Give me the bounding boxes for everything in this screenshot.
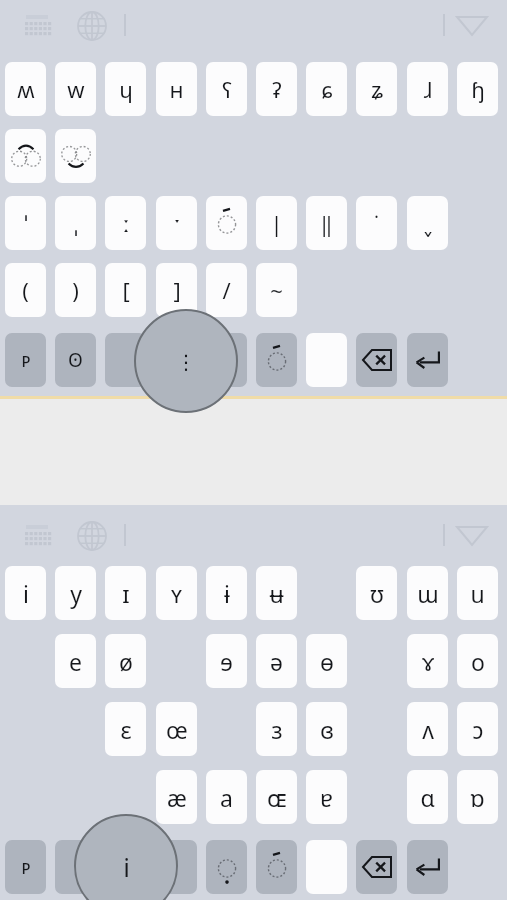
button[interactable]: Key [55, 840, 96, 894]
staticText: ʊ [370, 578, 384, 609]
staticText: ʉ [269, 578, 284, 609]
staticText: ɵ [320, 646, 334, 677]
button[interactable]: ɨ [206, 566, 247, 620]
button[interactable]: ‖ [306, 196, 347, 250]
button[interactable]: ɥ [105, 62, 146, 116]
button[interactable]: Diacritic [206, 196, 247, 250]
button[interactable]: ɒ [457, 770, 498, 824]
button[interactable]: œ [156, 702, 197, 756]
button[interactable]: Key [105, 840, 146, 894]
staticText: ɞ [320, 714, 334, 745]
button[interactable]: ɧ [457, 62, 498, 116]
button[interactable]: ɘ [206, 634, 247, 688]
button[interactable]: e [55, 634, 96, 688]
button[interactable]: Key [156, 333, 197, 387]
button[interactable]: Enter [407, 333, 448, 387]
button[interactable]: Key [306, 333, 347, 387]
button[interactable]: æ [156, 770, 197, 824]
staticText: i [23, 578, 29, 609]
button[interactable]: ɜ [256, 702, 297, 756]
staticText: ʑ [371, 74, 383, 104]
staticText: ɛ [120, 714, 132, 745]
button[interactable]: / [206, 263, 247, 317]
button[interactable]: ɐ [306, 770, 347, 824]
button[interactable]: ʏ [156, 566, 197, 620]
button[interactable]: Diacritic [256, 840, 297, 894]
staticText: ɔ [472, 714, 484, 745]
button[interactable]: w [55, 62, 96, 116]
button[interactable]: ɶ [256, 770, 297, 824]
staticText: i [123, 849, 130, 884]
button[interactable]: ˈ [5, 196, 46, 250]
button[interactable]: ɯ [407, 566, 448, 620]
staticText: ( [22, 275, 29, 305]
staticText: ː [122, 208, 130, 238]
button[interactable]: ɛ [105, 702, 146, 756]
button[interactable]: Enter [407, 840, 448, 894]
button[interactable]: ɤ [407, 634, 448, 688]
button[interactable]: ˑ [156, 196, 197, 250]
staticText: ˙ [374, 208, 379, 238]
button[interactable]: Key [105, 333, 146, 387]
button[interactable]: ᴘ [5, 840, 46, 894]
button[interactable]: ~ [256, 263, 297, 317]
staticText: ø [119, 646, 133, 677]
staticText: ə [270, 646, 283, 677]
button[interactable]: ʉ [256, 566, 297, 620]
button[interactable]: Change language [76, 10, 108, 42]
button[interactable]: ɵ [306, 634, 347, 688]
staticText: ~ [270, 275, 283, 305]
button[interactable]: | [256, 196, 297, 250]
staticText: | [270, 208, 283, 238]
button[interactable]: ə [256, 634, 297, 688]
button[interactable]: y [55, 566, 96, 620]
button[interactable]: Settings [22, 11, 60, 41]
button[interactable]: ɺ [407, 62, 448, 116]
button[interactable]: ɪ [105, 566, 146, 620]
button[interactable]: Tie bar [55, 129, 96, 183]
button[interactable]: ɕ [306, 62, 347, 116]
button[interactable]: ( [5, 263, 46, 317]
button[interactable]: Change language [76, 520, 108, 552]
button[interactable]: ʊ [356, 566, 397, 620]
button[interactable]: Key [206, 333, 247, 387]
button[interactable]: Key [156, 840, 197, 894]
button[interactable]: ɑ [407, 770, 448, 824]
button[interactable]: [ [105, 263, 146, 317]
button[interactable]: u [457, 566, 498, 620]
staticText: ˌ [74, 208, 78, 238]
button[interactable]: ʘ [55, 333, 96, 387]
button[interactable]: Diacritic [256, 333, 297, 387]
button[interactable]: ˌ [55, 196, 96, 250]
button[interactable]: Backspace [356, 840, 397, 894]
button[interactable]: ø [105, 634, 146, 688]
button[interactable]: a [206, 770, 247, 824]
button[interactable]: Key [306, 840, 347, 894]
button[interactable]: ʑ [356, 62, 397, 116]
button[interactable]: Diacritic [206, 840, 247, 894]
button[interactable]: ɞ [306, 702, 347, 756]
button[interactable]: ) [55, 263, 96, 317]
staticText: w [67, 74, 85, 104]
button[interactable]: Tie bar [5, 129, 46, 183]
button[interactable]: o [457, 634, 498, 688]
button[interactable]: ʍ [5, 62, 46, 116]
button[interactable]: ] [156, 263, 197, 317]
button[interactable]: ʜ [156, 62, 197, 116]
button[interactable]: ˯ [407, 196, 448, 250]
button[interactable]: ᴘ [5, 333, 46, 387]
button[interactable]: Hide keyboard [455, 14, 489, 38]
button[interactable]: Backspace [356, 333, 397, 387]
button[interactable]: ʕ [206, 62, 247, 116]
button[interactable]: ː [105, 196, 146, 250]
staticText: æ [167, 782, 187, 813]
button[interactable]: ˙ [356, 196, 397, 250]
button[interactable]: i [5, 566, 46, 620]
button[interactable]: ʡ [256, 62, 297, 116]
button[interactable]: Settings [22, 521, 60, 551]
staticText: ] [173, 275, 181, 305]
staticText: ɒ [470, 782, 485, 813]
button[interactable]: ɔ [457, 702, 498, 756]
button[interactable]: ʌ [407, 702, 448, 756]
button[interactable]: Hide keyboard [455, 524, 489, 548]
